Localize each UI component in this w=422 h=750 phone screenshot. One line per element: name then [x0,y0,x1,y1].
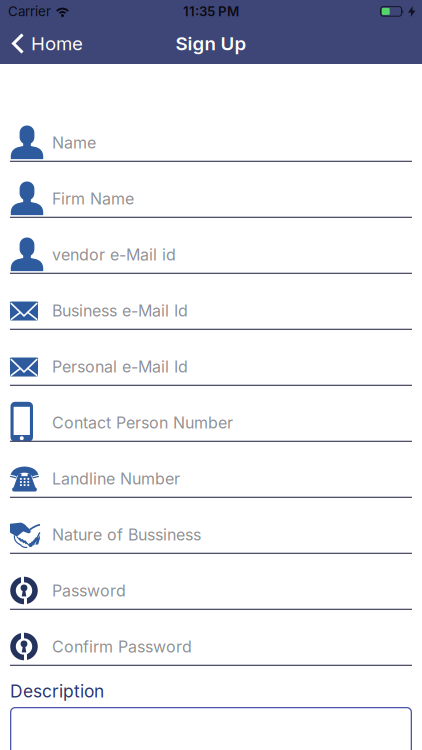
button[interactable]: Business e-Mail Id [0,275,422,331]
staticText: vendor e-Mail id [52,245,176,264]
staticText: Landline Number [52,469,180,488]
button[interactable]: Name [0,107,422,163]
button[interactable]: vendor e-Mail id [0,219,422,275]
staticText: Description [10,681,104,701]
staticText: Name [52,133,96,152]
staticText: Sign Up [175,32,246,54]
staticText: Firm Name [52,189,134,208]
staticText: Confirm Password [52,637,192,656]
button[interactable]: Password [0,555,422,611]
staticText: Business e-Mail Id [52,301,188,320]
staticText: Nature of Bussiness [52,525,201,544]
button[interactable]: Contact Person Number [0,387,422,443]
staticText: Home [31,32,83,54]
button[interactable]: Landline Number [0,443,422,499]
staticText: Password [52,581,126,600]
staticText: Personal e-Mail Id [52,357,188,376]
staticText: Contact Person Number [52,413,233,432]
staticText: 11:35 PM [183,4,239,19]
button[interactable]: Description [10,707,412,750]
button[interactable]: Confirm Password [0,611,422,667]
button[interactable]: Personal e-Mail Id [0,331,422,387]
staticText: Carrier [8,4,51,19]
button[interactable]: Back to Home [12,32,83,54]
button[interactable]: Nature of Bussiness [0,499,422,555]
button[interactable]: Firm Name [0,163,422,219]
